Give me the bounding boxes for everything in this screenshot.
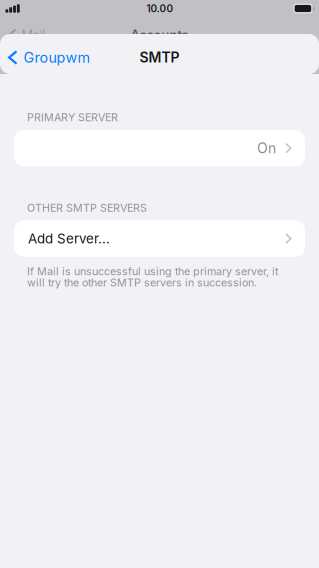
button[interactable]: Add Server... xyxy=(14,220,305,257)
button[interactable]: On xyxy=(14,130,305,166)
staticText: Add Server... xyxy=(28,230,110,247)
staticText: If Mail is unsuccessful using the primar… xyxy=(27,265,278,278)
staticText: PRIMARY SERVER xyxy=(27,111,118,124)
staticText: On xyxy=(257,140,276,157)
staticText: SMTP xyxy=(139,49,179,66)
button[interactable]: Groupwm xyxy=(0,37,101,77)
staticText: 10.00 xyxy=(146,2,173,15)
staticText: will try the other SMTP servers in succe… xyxy=(27,276,257,289)
staticText: Mail xyxy=(22,27,46,43)
staticText: Accounts xyxy=(130,27,188,43)
staticText: OTHER SMTP SERVERS xyxy=(27,201,147,214)
staticText: Groupwm xyxy=(24,49,91,66)
